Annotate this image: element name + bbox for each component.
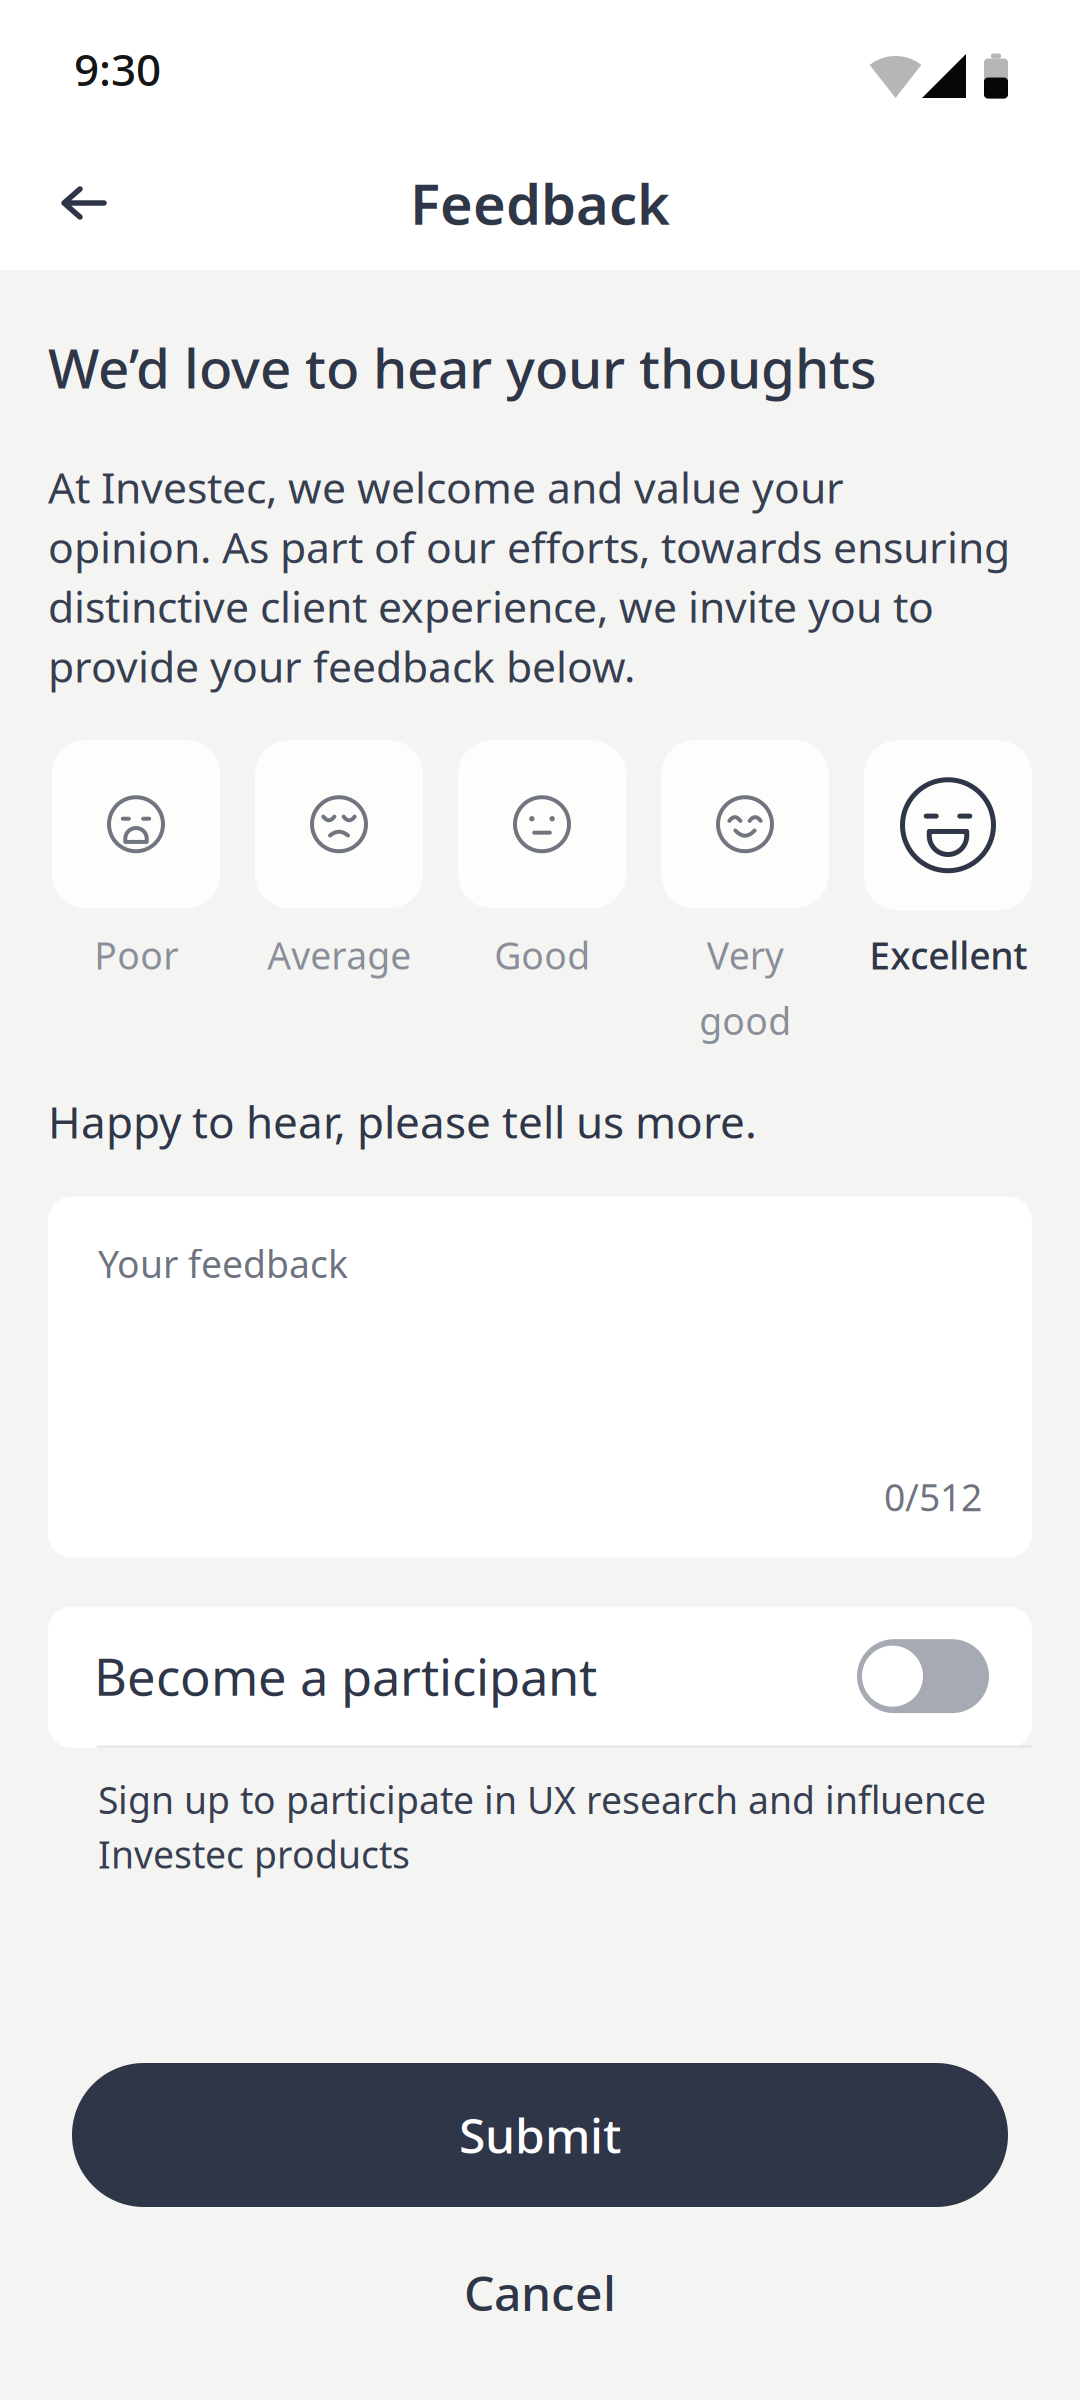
staticText: Become a participant [94, 1642, 597, 1710]
button[interactable]: Submit [72, 2063, 1008, 2207]
button[interactable]: Back [27, 137, 141, 269]
staticText: Average [267, 930, 411, 980]
button[interactable]: Poor [52, 740, 220, 1047]
staticText: We’d love to hear your thoughts [48, 331, 877, 404]
staticText: At Investec, we welcome and value your o… [48, 459, 1010, 694]
staticText: Excellent [869, 930, 1027, 980]
button[interactable]: Excellent [864, 740, 1032, 1047]
staticText: Cancel [464, 2261, 616, 2324]
button[interactable]: Average [255, 740, 423, 1047]
staticText: 0/512 [884, 1472, 982, 1522]
button[interactable]: Become a participant [48, 1607, 1032, 1748]
staticText: Your feedback [98, 1239, 348, 1288]
staticText: Poor [94, 930, 178, 980]
staticText: 9:30 [74, 40, 161, 98]
staticText: Happy to hear, please tell us more. [48, 1092, 757, 1151]
staticText: Submit [459, 2103, 621, 2167]
staticText: Good [494, 930, 590, 980]
button[interactable]: Cancel [0, 2261, 1080, 2324]
staticText: Sign up to participate in UX research an… [98, 1775, 986, 1879]
staticText: Very good [699, 930, 791, 1045]
button[interactable]: Good [458, 740, 626, 1047]
staticText: Feedback [410, 166, 670, 240]
button[interactable]: Very good [661, 740, 829, 1047]
